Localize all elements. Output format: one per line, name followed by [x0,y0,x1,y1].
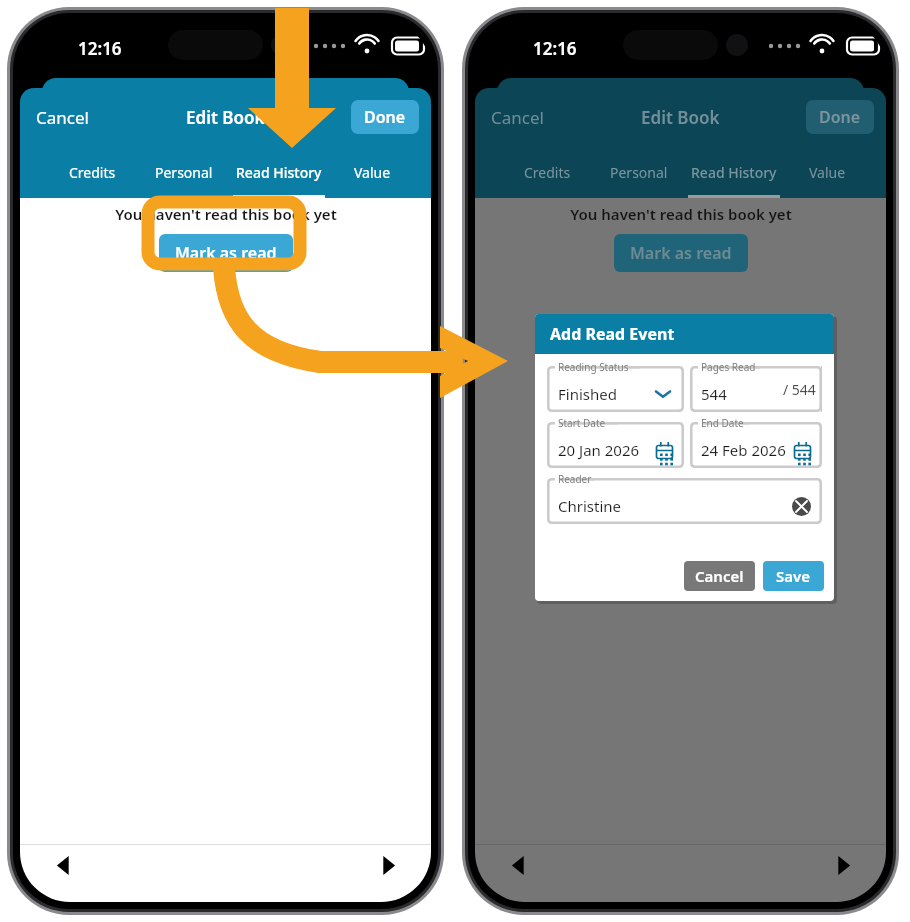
staticText: Cancel [36,106,89,129]
staticText: You haven't read this book yet [570,204,792,224]
staticText: Read History [236,163,322,182]
button[interactable]: Done [351,100,419,134]
button[interactable]: Forward [820,845,864,885]
button[interactable]: Back [42,845,86,885]
staticText: 20 Jan 2026 [558,440,640,460]
staticText: Credits [69,163,116,182]
staticText: 12:16 [78,37,122,60]
staticText: Add Read Event [550,323,675,345]
staticText: Value [354,163,391,182]
button[interactable]: Credits [501,146,593,198]
button[interactable]: Save [763,561,824,591]
staticText: Save [776,566,811,586]
staticText: Cancel [695,566,744,586]
staticText: Credits [524,163,571,182]
button[interactable]: Done [806,100,874,134]
staticText: Mark as read [630,242,732,264]
staticText: Mark as read [175,242,277,264]
staticText: / 544 [783,380,816,399]
staticText: Edit Book [641,106,720,129]
staticText: Done [364,106,406,128]
staticText: Finished [558,384,617,404]
button[interactable]: Cancel [684,561,755,591]
button[interactable]: Value [326,146,418,198]
button[interactable]: Value [781,146,873,198]
staticText: Start Date [558,416,606,430]
staticText: Reader [558,472,592,486]
button[interactable]: Clear [792,497,811,516]
button[interactable]: Mark as read [614,234,748,272]
staticText: Christine [558,496,622,516]
staticText: 24 Feb 2026 [701,440,786,460]
staticText: Value [809,163,846,182]
staticText: Cancel [491,106,544,129]
button[interactable]: Mark as read [159,234,293,272]
staticText: 544 [701,384,727,404]
button[interactable]: Personal [593,146,685,198]
button[interactable]: Credits [46,146,138,198]
button[interactable]: Read History [688,146,780,198]
staticText: Reading Status [558,360,629,374]
button[interactable]: Forward [365,845,409,885]
button[interactable]: Personal [138,146,230,198]
staticText: End Date [701,416,744,430]
staticText: Edit Book [186,106,265,129]
staticText: Read History [691,163,777,182]
button[interactable]: Back [497,845,541,885]
staticText: 12:16 [533,37,577,60]
staticText: Done [819,106,861,128]
button[interactable]: Cancel [485,100,550,135]
button[interactable]: Read History [233,146,325,198]
button[interactable]: Cancel [30,100,95,135]
staticText: Personal [610,163,668,182]
staticText: Pages Read [701,360,756,374]
staticText: You haven't read this book yet [115,204,337,224]
staticText: Personal [155,163,213,182]
